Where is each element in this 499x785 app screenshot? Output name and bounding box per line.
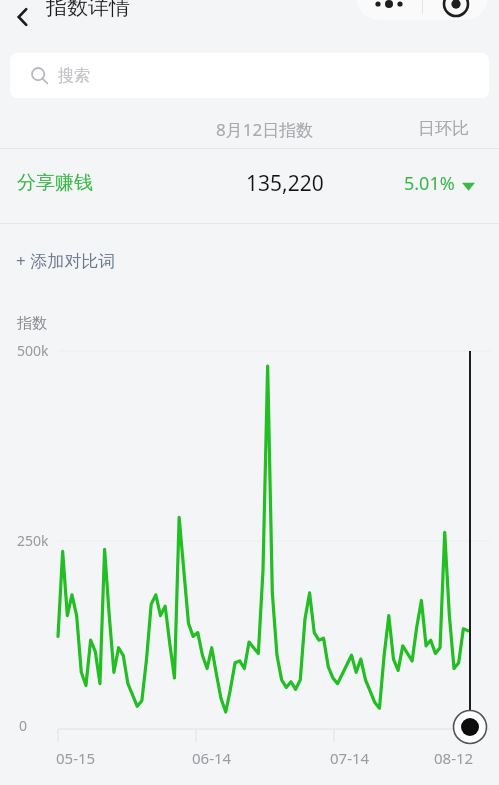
button[interactable]: Close (423, 0, 488, 20)
button[interactable]: + 添加对比词 (0, 224, 499, 294)
staticText: 06-14 (192, 748, 232, 768)
staticText: + 添加对比词 (16, 249, 116, 272)
staticText: 08-12 (434, 748, 474, 768)
button[interactable]: 搜索 (10, 53, 489, 98)
staticText: 8月12日指数 (216, 118, 314, 141)
staticText: 250k (17, 531, 49, 550)
staticText: 0 (19, 716, 28, 735)
staticText: 指数 (17, 314, 47, 333)
staticText: 05-15 (56, 748, 96, 768)
staticText: 搜索 (58, 66, 90, 86)
staticText: 5.01% (404, 171, 455, 196)
staticText: 135,220 (246, 169, 324, 198)
staticText: 07-14 (330, 748, 370, 768)
staticText: 分享赚钱 (17, 171, 93, 195)
button[interactable]: More (356, 0, 422, 20)
staticText: 日环比 (418, 118, 469, 139)
staticText: 指数详情 (46, 0, 130, 20)
button[interactable]: Back (6, 0, 40, 34)
staticText: 500k (17, 341, 49, 360)
button[interactable]: 分享赚钱 (0, 149, 499, 223)
